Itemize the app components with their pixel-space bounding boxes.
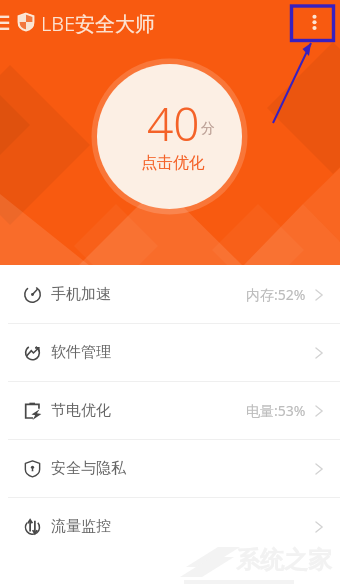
- button[interactable]: 软件管理: [0, 324, 340, 381]
- button[interactable]: 节电优化: [0, 382, 340, 439]
- staticText: 电量:53%: [246, 401, 306, 420]
- staticText: 流量监控: [51, 517, 111, 536]
- staticText: 分: [201, 120, 215, 138]
- button[interactable]: 安全与隐私: [0, 440, 340, 497]
- button[interactable]: 40: [97, 64, 242, 209]
- staticText: 手机加速: [51, 285, 111, 304]
- button[interactable]: Menu: [0, 9, 20, 37]
- button[interactable]: 手机加速: [0, 266, 340, 323]
- button[interactable]: More options: [298, 5, 331, 40]
- staticText: 节电优化: [51, 401, 111, 420]
- button[interactable]: 流量监控: [0, 498, 340, 555]
- staticText: 内存:52%: [246, 285, 306, 304]
- staticText: 系统之家: [236, 545, 332, 575]
- staticText: 40: [147, 92, 200, 155]
- staticText: LBE安全大师: [41, 10, 155, 37]
- staticText: 软件管理: [51, 343, 111, 362]
- staticText: 安全与隐私: [51, 459, 126, 478]
- staticText: 点击优化: [141, 153, 205, 173]
